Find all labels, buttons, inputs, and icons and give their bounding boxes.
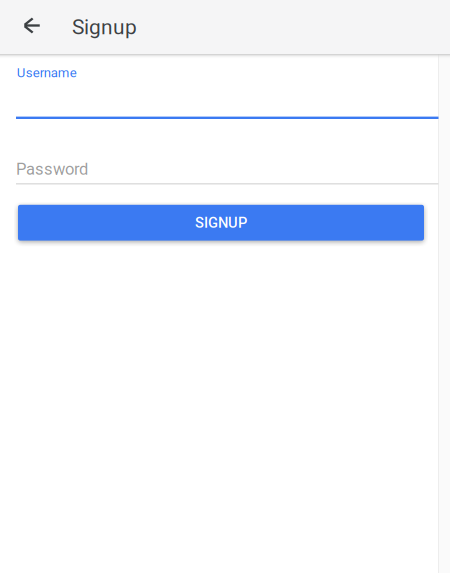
button[interactable]: Back <box>14 9 50 45</box>
staticText: Username <box>17 65 77 80</box>
button[interactable]: SIGNUP <box>18 205 424 241</box>
button[interactable]: Username <box>0 55 438 119</box>
button[interactable]: Password <box>0 120 438 184</box>
staticText: SIGNUP <box>195 214 247 231</box>
staticText: Signup <box>72 15 137 39</box>
staticText: Password <box>16 159 88 179</box>
